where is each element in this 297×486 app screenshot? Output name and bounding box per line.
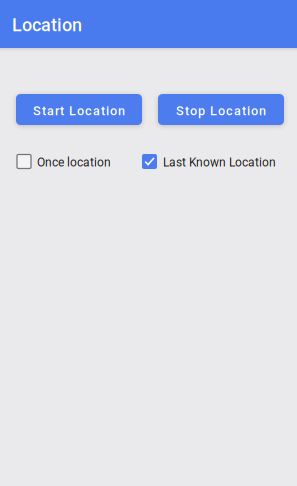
button[interactable]: Last Known Location [142,154,276,169]
staticText: Last Known Location [163,155,276,170]
staticText: Location [12,14,82,36]
staticText: S t o p L o c a t i o n [176,104,266,118]
button[interactable]: Once location [17,154,111,169]
button[interactable]: S t o p L o c a t i o n [158,94,284,125]
staticText: Once location [37,155,111,170]
staticText: S t a r t L o c a t i o n [33,104,125,118]
button[interactable]: S t a r t L o c a t i o n [16,94,142,125]
